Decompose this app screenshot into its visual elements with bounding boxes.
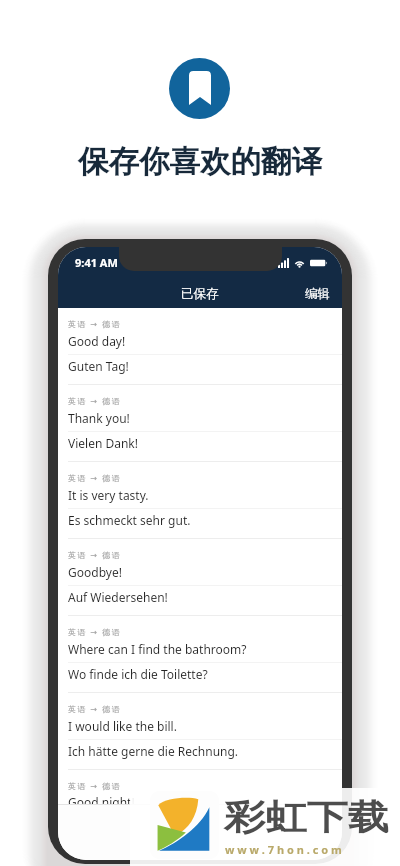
staticText: 9:41 AM <box>75 255 118 270</box>
staticText: Ich hätte gerne die Rechnung. <box>68 743 239 759</box>
staticText: 英语 → 德语 <box>68 549 122 560</box>
staticText: 彩虹下载 <box>224 796 389 839</box>
staticText: 翻译器 <box>190 826 211 835</box>
staticText: Good day! <box>68 333 126 349</box>
button[interactable]: 英语 → 德语 <box>58 385 342 462</box>
button[interactable]: 翻译器 <box>178 805 223 835</box>
staticText: Vielen Dank! <box>68 435 139 451</box>
button[interactable]: 英语 → 德语 <box>58 770 342 804</box>
staticText: 已保存 <box>181 286 219 302</box>
staticText: 英语 → 德语 <box>68 472 122 483</box>
other: Bookmark <box>169 58 230 119</box>
staticText: 英语 → 德语 <box>68 626 122 637</box>
staticText: Good night! <box>68 794 135 804</box>
staticText: Guten Tag! <box>68 358 129 374</box>
staticText: 英语 → 德语 <box>68 395 122 406</box>
staticText: 英语 → 德语 <box>68 318 122 329</box>
staticText: Wo finde ich die Toilette? <box>68 666 208 682</box>
staticText: w w w . 7 h o n . c o m <box>225 842 342 857</box>
staticText: 英语 → 德语 <box>68 780 122 791</box>
staticText: Auf Wiedersehen! <box>68 589 168 605</box>
staticText: 英语 → 德语 <box>68 703 122 714</box>
button[interactable]: 英语 → 德语 <box>58 308 342 385</box>
button[interactable]: 英语 → 德语 <box>58 693 342 770</box>
button[interactable]: 英语 → 德语 <box>58 462 342 539</box>
staticText: Goodbye! <box>68 564 122 580</box>
staticText: It is very tasty. <box>68 487 149 503</box>
button[interactable]: 编辑 <box>293 273 342 308</box>
staticText: 保存你喜欢的翻译 <box>0 143 400 181</box>
staticText: 编辑 <box>305 286 330 302</box>
button[interactable]: 英语 → 德语 <box>58 539 342 616</box>
staticText: Thank you! <box>68 410 130 426</box>
staticText: Where can I find the bathroom? <box>68 641 247 657</box>
button[interactable]: 英语 → 德语 <box>58 616 342 693</box>
staticText: Es schmeckt sehr gut. <box>68 512 191 528</box>
staticText: I would like the bill. <box>68 718 177 734</box>
